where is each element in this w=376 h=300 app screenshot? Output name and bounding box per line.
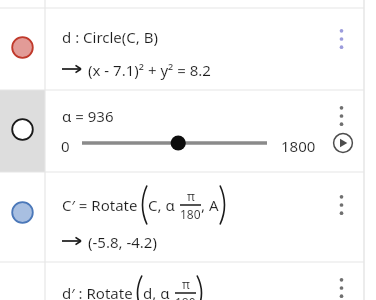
button[interactable]: α = 936 — [0, 90, 376, 172]
staticText: 180 — [175, 294, 196, 300]
button[interactable]: d : Circle(C, B) — [0, 8, 376, 90]
staticText: , A — [201, 195, 219, 215]
staticText: α = 936 — [62, 106, 114, 126]
staticText: 180 — [180, 206, 201, 222]
staticText: d′ : Rotate — [62, 283, 133, 300]
button[interactable]: More options — [327, 99, 355, 133]
staticText: (-5.8, -4.2) — [88, 232, 157, 252]
button[interactable]: Play animation — [331, 131, 355, 155]
staticText: π — [187, 188, 195, 204]
staticText: C′ = Rotate — [62, 195, 138, 215]
button[interactable]: More options — [327, 22, 355, 56]
staticText: C, α — [148, 195, 175, 215]
button[interactable]: Slider alpha — [76, 130, 274, 156]
button[interactable]: C′ = Rotate — [0, 172, 376, 262]
staticText: π — [182, 276, 190, 292]
button[interactable]: d′ : Rotate — [0, 262, 376, 300]
button[interactable]: More options — [327, 271, 355, 300]
staticText: d : Circle(C, B) — [62, 27, 158, 47]
staticText: d, α — [143, 283, 170, 300]
staticText: (x - 7.1)² + y² = 8.2 — [88, 60, 211, 80]
staticText: 0 — [61, 136, 70, 156]
staticText: 1800 — [281, 136, 316, 156]
button[interactable]: More options — [327, 188, 355, 222]
